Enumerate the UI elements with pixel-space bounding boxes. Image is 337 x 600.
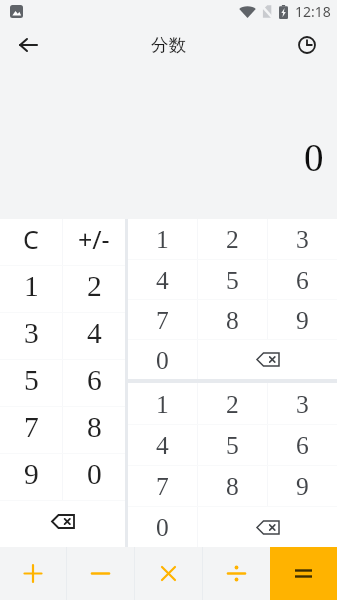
button[interactable]: 7	[128, 300, 197, 339]
button[interactable]: 0	[128, 507, 197, 547]
staticText: 3	[296, 225, 309, 253]
button[interactable]: Backspace	[198, 340, 337, 379]
button[interactable]: +/-	[63, 219, 125, 265]
staticText: 0	[87, 458, 102, 491]
button[interactable]: 1	[128, 383, 197, 424]
staticText: 5	[226, 431, 239, 459]
staticText: 8	[87, 411, 102, 444]
staticText: 2	[226, 225, 239, 253]
staticText: 4	[156, 266, 169, 294]
button[interactable]: 7	[0, 407, 62, 453]
button[interactable]: 9	[268, 300, 337, 339]
staticText: 6	[87, 364, 102, 397]
staticText: 4	[156, 431, 169, 459]
button[interactable]: 2	[198, 219, 267, 259]
button[interactable]: 5	[0, 360, 62, 406]
staticText: 12:18	[295, 2, 331, 21]
button[interactable]: Backspace	[0, 501, 125, 547]
button[interactable]: 9	[268, 466, 337, 506]
button[interactable]: 2	[63, 266, 125, 312]
button[interactable]: C	[0, 219, 62, 265]
staticText: 0	[156, 513, 169, 541]
button[interactable]: 3	[268, 383, 337, 424]
button[interactable]: 4	[63, 313, 125, 359]
button[interactable]: 0	[128, 340, 197, 379]
button[interactable]: 7	[128, 466, 197, 506]
button[interactable]: 1	[0, 266, 62, 312]
button[interactable]: History	[277, 22, 337, 68]
staticText: 7	[156, 472, 169, 500]
staticText: 2	[87, 270, 102, 303]
staticText: 3	[296, 390, 309, 418]
staticText: 6	[296, 431, 309, 459]
staticText: +/-	[78, 222, 110, 256]
staticText: 6	[296, 266, 309, 294]
staticText: 1	[24, 270, 39, 303]
button[interactable]: 9	[0, 454, 62, 500]
staticText: 1	[156, 390, 169, 418]
button[interactable]: 6	[268, 425, 337, 465]
staticText: 9	[296, 472, 309, 500]
button[interactable]: 2	[198, 383, 267, 424]
button[interactable]: 8	[198, 466, 267, 506]
staticText: 5	[226, 266, 239, 294]
button[interactable]: 4	[128, 260, 197, 299]
button[interactable]: Plus	[0, 547, 66, 600]
staticText: 4	[87, 317, 102, 350]
button[interactable]: 3	[268, 219, 337, 259]
staticText: 9	[296, 306, 309, 334]
staticText: 分数	[151, 34, 186, 56]
button[interactable]: 5	[198, 425, 267, 465]
staticText: 7	[24, 411, 39, 444]
button[interactable]: 1	[128, 219, 197, 259]
staticText: 8	[226, 472, 239, 500]
staticText: 0	[304, 136, 324, 179]
button[interactable]: 6	[268, 260, 337, 299]
staticText: 8	[226, 306, 239, 334]
staticText: 9	[24, 458, 39, 491]
button[interactable]: Backspace	[198, 507, 337, 547]
staticText: C	[23, 222, 39, 256]
staticText: 7	[156, 306, 169, 334]
button[interactable]: 3	[0, 313, 62, 359]
staticText: 3	[24, 317, 39, 350]
staticText: 2	[226, 390, 239, 418]
button[interactable]: 6	[63, 360, 125, 406]
button[interactable]: 0	[63, 454, 125, 500]
staticText: 5	[24, 364, 39, 397]
button[interactable]: Minus	[67, 547, 134, 600]
button[interactable]: Divide	[203, 547, 270, 600]
button[interactable]: Multiply	[135, 547, 202, 600]
button[interactable]: 5	[198, 260, 267, 299]
staticText: 1	[156, 225, 169, 253]
button[interactable]: 4	[128, 425, 197, 465]
button[interactable]: 8	[63, 407, 125, 453]
staticText: 0	[156, 346, 169, 374]
button[interactable]: 8	[198, 300, 267, 339]
button[interactable]: Back	[0, 22, 56, 68]
button[interactable]: Equals	[270, 547, 337, 600]
